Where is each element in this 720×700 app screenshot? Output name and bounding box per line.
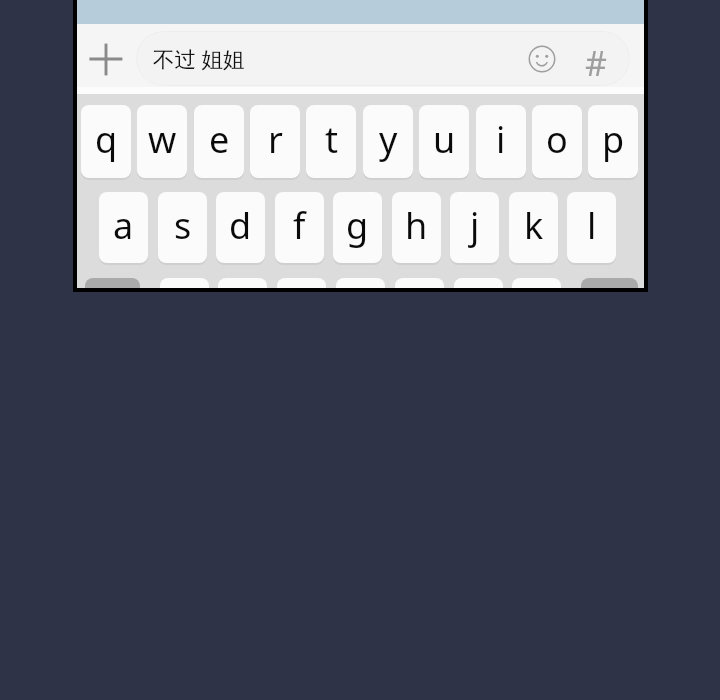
button[interactable] — [395, 278, 444, 288]
button[interactable] — [277, 278, 326, 288]
button[interactable]: l — [567, 192, 616, 263]
button[interactable] — [512, 278, 561, 288]
button[interactable]: k — [509, 192, 558, 263]
button[interactable]: w — [137, 105, 187, 178]
staticText: f — [293, 201, 306, 250]
button[interactable]: h — [392, 192, 441, 263]
staticText: k — [524, 201, 544, 250]
staticText: o — [546, 115, 568, 164]
button[interactable] — [581, 278, 638, 288]
staticText: y — [379, 115, 398, 164]
button[interactable]: o — [532, 105, 582, 178]
button[interactable]: Tags — [577, 40, 615, 78]
staticText: j — [470, 201, 480, 250]
button[interactable]: t — [306, 105, 356, 178]
button[interactable]: Emoji — [524, 41, 560, 77]
staticText: h — [405, 201, 428, 250]
button[interactable]: a — [99, 192, 148, 263]
staticText: 不过 姐姐 — [153, 44, 245, 73]
button[interactable] — [160, 278, 209, 288]
staticText: i — [496, 115, 506, 164]
button[interactable]: y — [363, 105, 413, 178]
button[interactable] — [85, 278, 140, 288]
staticText: e — [209, 115, 230, 164]
button[interactable]: i — [476, 105, 526, 178]
button[interactable]: r — [250, 105, 300, 178]
button[interactable]: u — [419, 105, 469, 178]
staticText: l — [587, 201, 597, 250]
button[interactable]: j — [450, 192, 499, 263]
staticText: g — [346, 201, 369, 250]
staticText: a — [113, 201, 134, 250]
staticText: t — [325, 115, 338, 164]
button[interactable]: e — [194, 105, 244, 178]
staticText: # — [585, 40, 607, 78]
button[interactable]: f — [275, 192, 324, 263]
button[interactable]: q — [81, 105, 131, 178]
staticText: w — [148, 115, 177, 164]
button[interactable]: p — [588, 105, 638, 178]
button[interactable]: 不过 姐姐 — [136, 31, 630, 86]
staticText: p — [602, 115, 625, 164]
staticText: s — [174, 201, 192, 250]
button[interactable]: Add — [83, 36, 129, 82]
button[interactable]: d — [216, 192, 265, 263]
button[interactable] — [454, 278, 503, 288]
staticText: d — [229, 201, 252, 250]
staticText: u — [433, 115, 456, 164]
staticText: r — [268, 115, 283, 164]
button[interactable]: s — [158, 192, 207, 263]
button[interactable] — [218, 278, 267, 288]
staticText: q — [95, 115, 118, 164]
button[interactable] — [336, 278, 385, 288]
button[interactable]: g — [333, 192, 382, 263]
